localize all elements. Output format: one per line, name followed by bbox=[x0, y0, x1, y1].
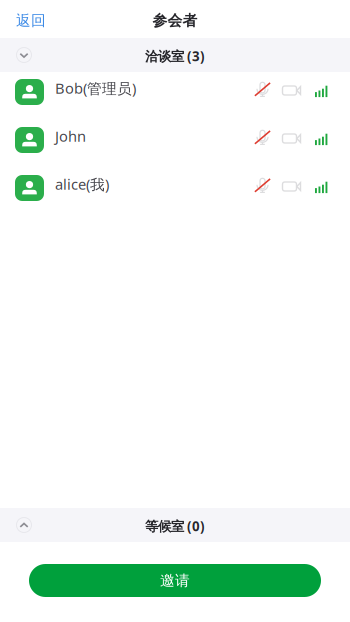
staticText: 参会者 bbox=[152, 11, 197, 29]
staticText: 返回 bbox=[16, 11, 46, 29]
staticText: 洽谈室 (3) bbox=[145, 47, 205, 65]
button[interactable]: 邀请 bbox=[29, 564, 321, 597]
button[interactable]: John bbox=[0, 120, 350, 168]
button[interactable]: alice(我) bbox=[0, 168, 350, 216]
button[interactable]: 等候室 (0) bbox=[0, 508, 350, 542]
staticText: 邀请 bbox=[160, 571, 190, 589]
staticText: Bob(管理员) bbox=[55, 78, 136, 98]
button[interactable]: 洽谈室 (3) bbox=[0, 38, 350, 72]
staticText: 等候室 (0) bbox=[145, 517, 205, 535]
staticText: alice(我) bbox=[55, 174, 109, 194]
staticText: John bbox=[55, 126, 86, 146]
button[interactable]: Bob(管理员) bbox=[0, 72, 350, 120]
button[interactable]: 返回 bbox=[0, 1, 62, 37]
